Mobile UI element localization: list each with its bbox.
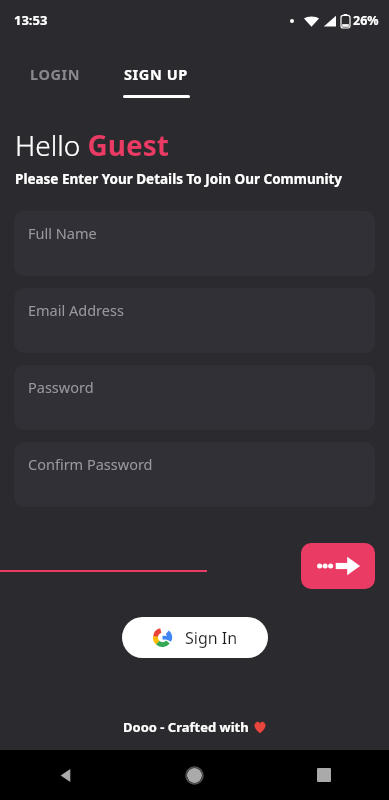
staticText: Full Name: [28, 223, 97, 243]
button[interactable]: Recent apps: [302, 753, 346, 797]
staticText: Password: [28, 377, 94, 397]
staticText: Sign In: [185, 627, 238, 649]
button[interactable]: Home: [172, 753, 216, 797]
button[interactable]: Back: [43, 753, 87, 797]
button[interactable]: Password: [14, 365, 375, 430]
button[interactable]: Email Address: [14, 288, 375, 353]
staticText: SIGN UP: [124, 64, 188, 84]
staticText: Hello Guest: [15, 126, 169, 164]
button[interactable]: Sign In: [122, 617, 268, 658]
staticText: Please Enter Your Details To Join Our Co…: [15, 170, 343, 188]
button[interactable]: Full Name: [14, 211, 375, 276]
staticText: Email Address: [28, 300, 124, 320]
staticText: 13:53: [14, 11, 48, 29]
staticText: Dooo - Crafted with: [123, 718, 253, 736]
staticText: 26%: [353, 12, 379, 29]
button[interactable]: Confirm Password: [14, 442, 375, 507]
button[interactable]: SIGN UP: [110, 58, 202, 98]
staticText: Confirm Password: [28, 454, 153, 474]
staticText: LOGIN: [30, 64, 81, 84]
button[interactable]: Next: [301, 543, 375, 589]
button[interactable]: LOGIN: [14, 58, 97, 90]
